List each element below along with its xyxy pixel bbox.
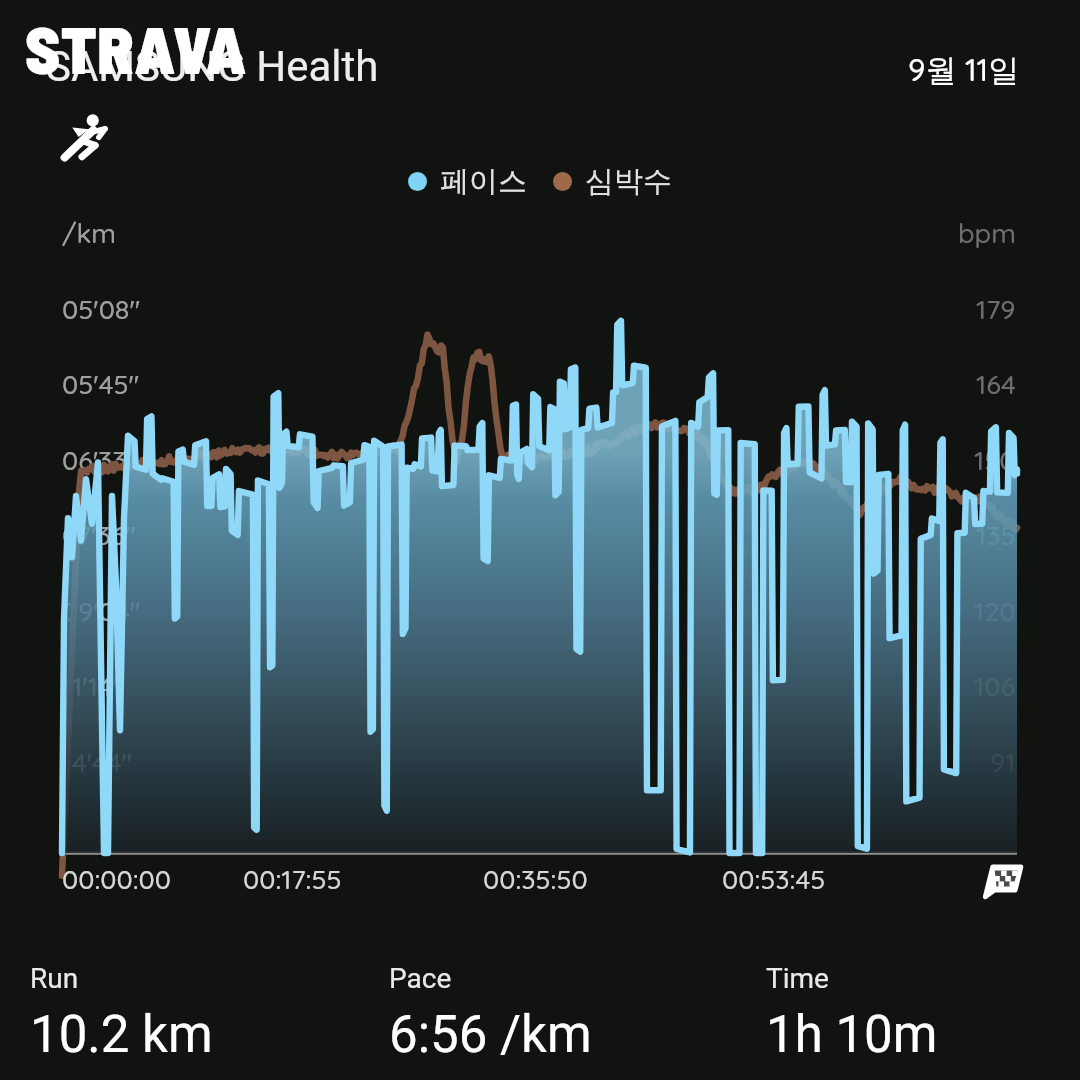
staticText: 150 (974, 443, 1016, 477)
other: Running activity (54, 106, 118, 170)
button[interactable]: 심박수 (551, 161, 674, 202)
staticText: 05'45" (62, 367, 140, 401)
button[interactable]: Run (30, 962, 213, 1065)
button[interactable]: Pace (389, 962, 592, 1065)
staticText: 00:53:45 (722, 862, 826, 896)
button[interactable]: Time (766, 962, 938, 1065)
staticText: bpm (958, 216, 1016, 250)
staticText: 05'08" (62, 292, 141, 326)
staticText: 91 (990, 745, 1016, 779)
staticText: Pace (389, 962, 452, 995)
staticText: STRAVA (25, 8, 247, 87)
staticText: 14'44" (62, 745, 133, 779)
staticText: 11'14" (62, 669, 124, 703)
staticText: 10.2 km (30, 1005, 213, 1065)
staticText: 00:35:50 (483, 862, 588, 896)
staticText: SAMSUNG Health (46, 42, 379, 91)
staticText: 09'04" (62, 594, 141, 628)
staticText: 06'33" (62, 443, 138, 477)
staticText: 120 (974, 594, 1016, 628)
staticText: 심박수 (585, 163, 672, 200)
staticText: Run (30, 962, 79, 995)
staticText: Time (766, 962, 829, 995)
staticText: 1h 10m (766, 1005, 938, 1065)
staticText: 00:00:00 (62, 862, 172, 896)
staticText: 6:56 /km (389, 1005, 592, 1065)
other: Finish (980, 858, 1024, 898)
staticText: 00:17:55 (243, 862, 342, 896)
staticText: /km (62, 216, 117, 250)
staticText: 페이스 (440, 163, 527, 200)
staticText: 135 (976, 518, 1016, 552)
staticText: 179 (976, 292, 1016, 326)
staticText: 9월 11일 (908, 50, 1020, 90)
staticText: 164 (976, 367, 1016, 401)
button[interactable]: 페이스 (406, 161, 529, 202)
staticText: 106 (974, 669, 1016, 703)
staticText: 07'36" (62, 518, 137, 552)
